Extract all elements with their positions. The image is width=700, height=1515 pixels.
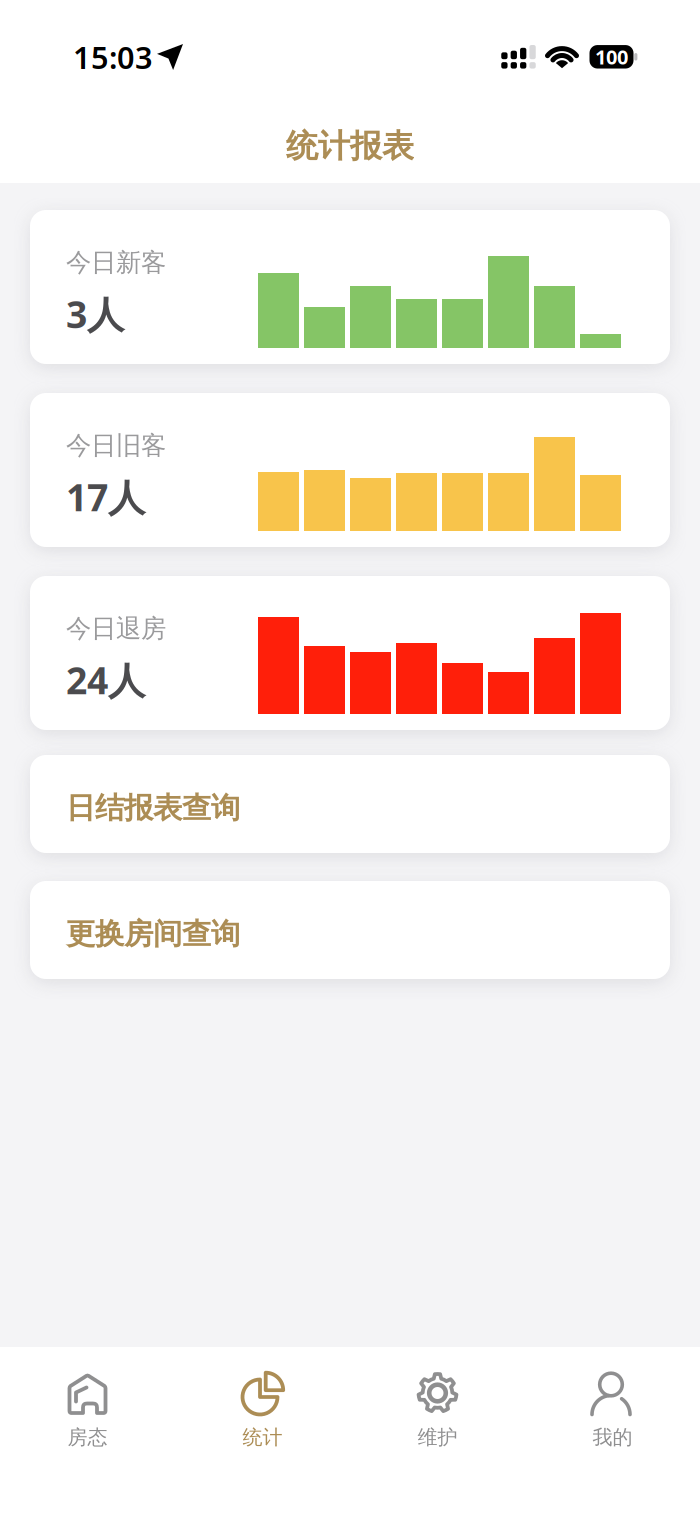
- staticText: 日结报表查询: [66, 790, 240, 826]
- staticText: 3人: [66, 289, 124, 339]
- staticText: 100: [595, 43, 628, 70]
- staticText: 统计报表: [286, 126, 414, 166]
- staticText: 24人: [66, 655, 145, 705]
- staticText: 今日旧客: [66, 430, 166, 461]
- staticText: 更换房间查询: [66, 916, 240, 952]
- staticText: 统计: [242, 1425, 282, 1450]
- staticText: 17人: [66, 472, 145, 522]
- staticText: 今日新客: [66, 247, 166, 278]
- staticText: 房态: [67, 1425, 107, 1450]
- staticText: 我的: [592, 1425, 632, 1450]
- staticText: 15:03: [73, 37, 153, 77]
- staticText: 今日退房: [66, 613, 166, 644]
- staticText: 维护: [417, 1425, 457, 1450]
